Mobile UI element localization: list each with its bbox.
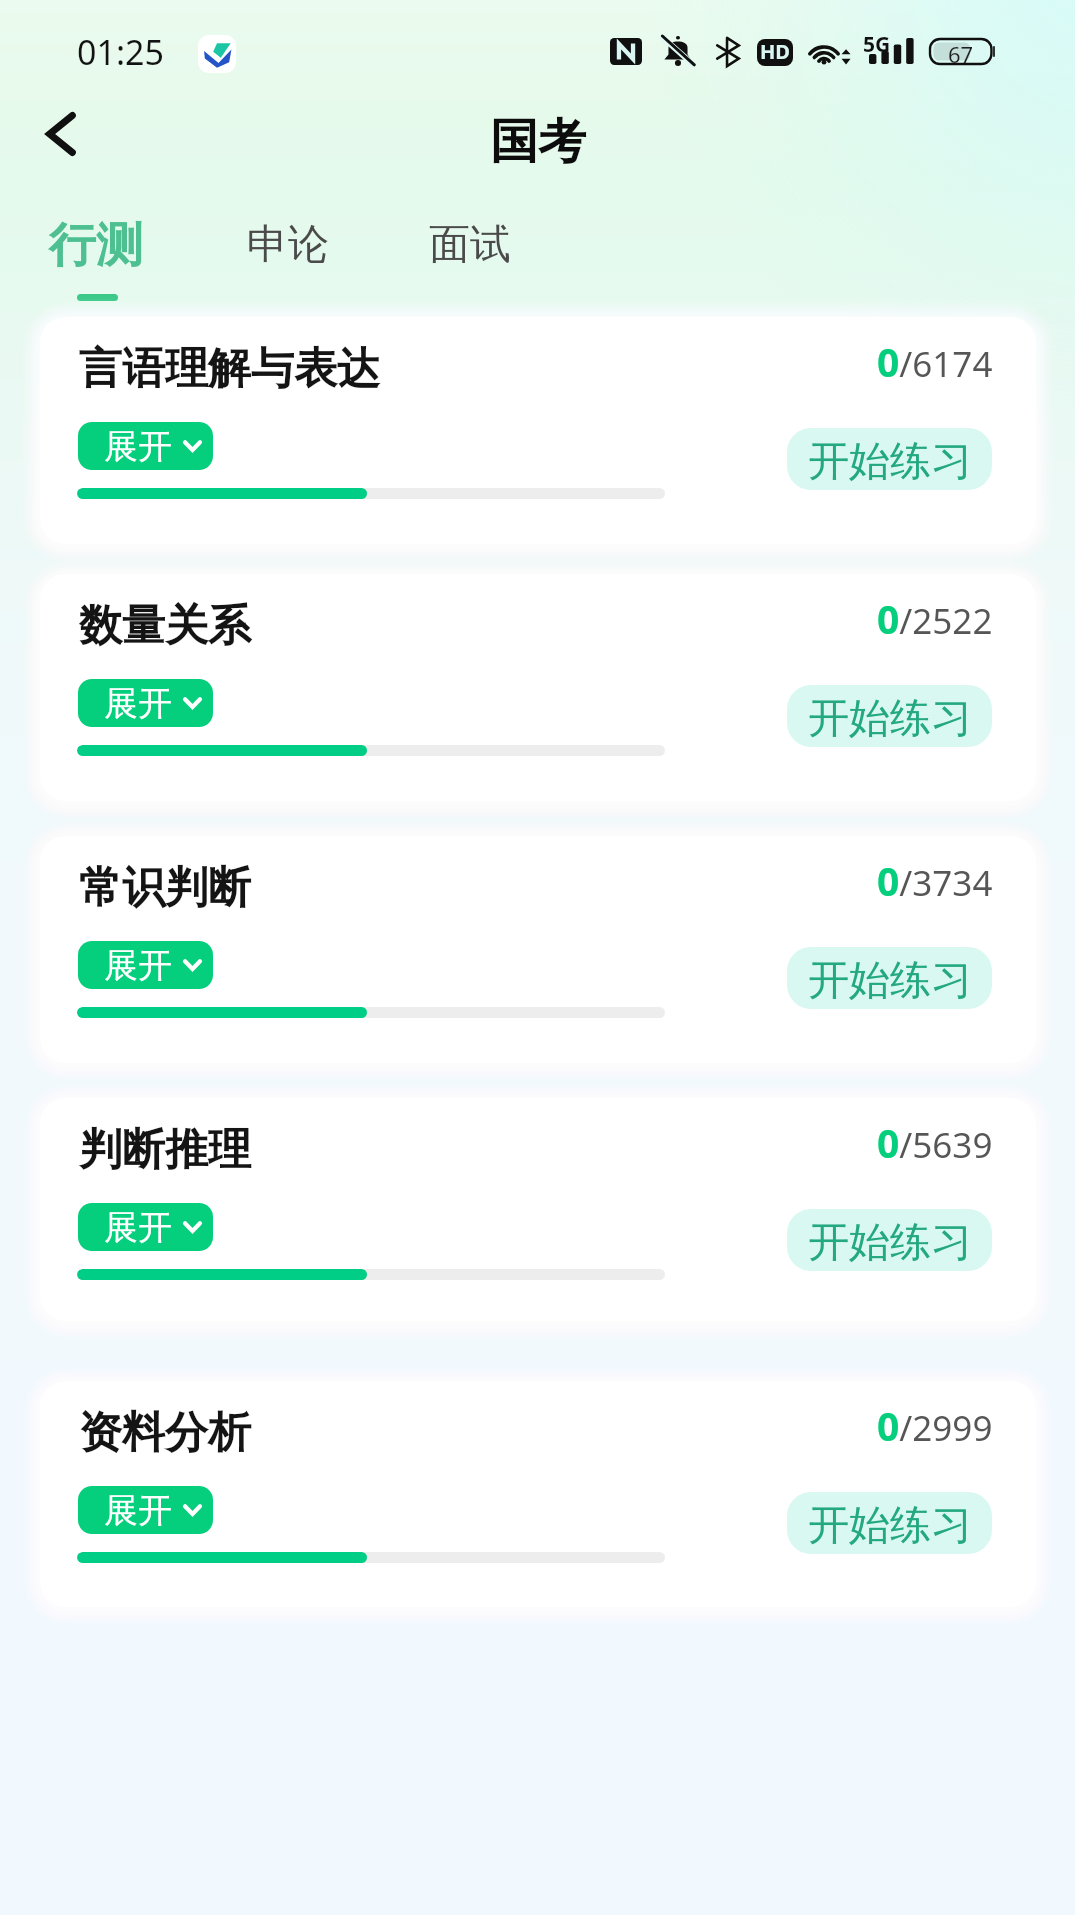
staticText: 67 (948, 39, 974, 64)
staticText: HD (760, 39, 790, 65)
staticText: 开始练习 (808, 1217, 972, 1269)
staticText: 01:25 (77, 29, 164, 75)
staticText: 展开 (104, 1489, 172, 1532)
staticText: 行测 (49, 216, 143, 275)
staticText: 0/2522 (877, 592, 993, 645)
staticText: 0/2999 (877, 1399, 993, 1452)
staticText: 言语理解与表达 (79, 342, 380, 396)
staticText: 0/5639 (877, 1116, 993, 1169)
button[interactable]: 常识判断 (40, 836, 1036, 1063)
staticText: 5G (863, 30, 891, 59)
button[interactable]: 资料分析 (40, 1381, 1036, 1607)
button[interactable]: 开始练习 (787, 1209, 992, 1271)
button[interactable]: 开始练习 (787, 1492, 992, 1554)
staticText: 数量关系 (79, 599, 251, 653)
staticText: 0/3734 (877, 854, 993, 907)
staticText: 展开 (104, 682, 172, 725)
button[interactable]: 展开 (78, 679, 213, 727)
staticText: 展开 (104, 425, 172, 468)
staticText: 资料分析 (79, 1406, 251, 1460)
staticText: 常识判断 (79, 861, 251, 915)
staticText: 展开 (104, 944, 172, 987)
button[interactable]: 数量关系 (40, 574, 1036, 801)
staticText: 展开 (104, 1206, 172, 1249)
button[interactable]: 申论 (227, 212, 346, 302)
staticText: 开始练习 (808, 1500, 972, 1552)
button[interactable]: 展开 (78, 1486, 213, 1534)
staticText: 开始练习 (808, 955, 972, 1007)
button[interactable]: 开始练习 (787, 685, 992, 747)
staticText: 面试 (429, 219, 511, 271)
staticText: 开始练习 (808, 436, 972, 488)
staticText: 判断推理 (79, 1123, 251, 1177)
button[interactable]: 开始练习 (787, 947, 992, 1009)
button[interactable]: 行测 (29, 212, 163, 302)
staticText: 开始练习 (808, 693, 972, 745)
button[interactable]: 展开 (78, 1203, 213, 1251)
button[interactable]: 面试 (409, 212, 528, 302)
button[interactable]: Back (26, 100, 96, 168)
staticText: 国考 (490, 112, 586, 172)
button[interactable]: 展开 (78, 422, 213, 470)
button[interactable]: 判断推理 (40, 1098, 1036, 1321)
staticText: 申论 (247, 219, 329, 271)
button[interactable]: 开始练习 (787, 428, 992, 490)
button[interactable]: 展开 (78, 941, 213, 989)
button[interactable]: 言语理解与表达 (40, 317, 1036, 544)
staticText: 0/6174 (877, 335, 993, 388)
